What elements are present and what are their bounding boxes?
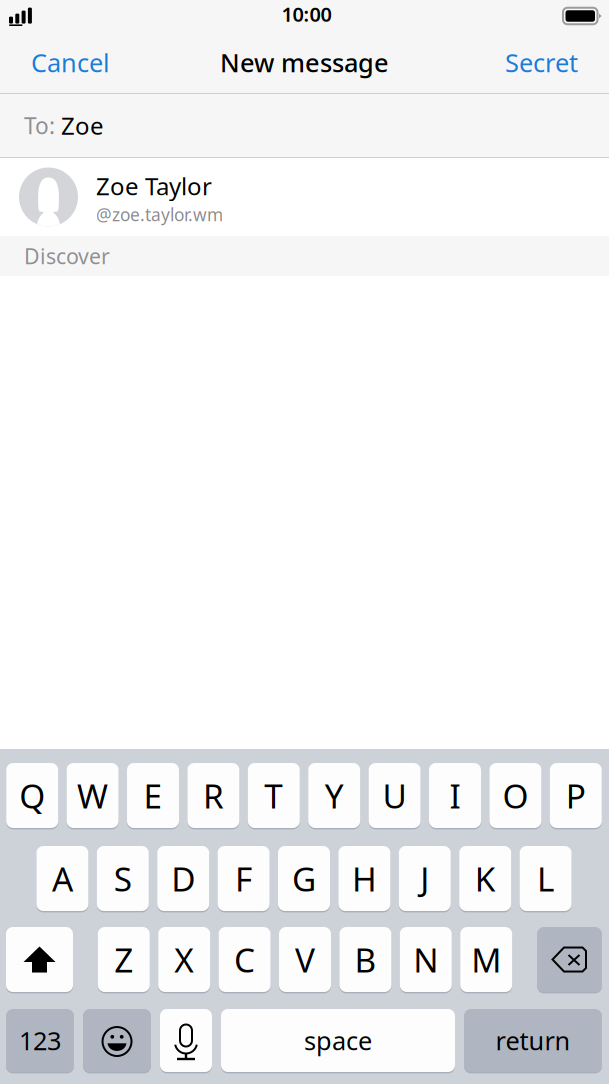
staticText: X: [174, 937, 194, 982]
staticText: return: [495, 1024, 570, 1057]
staticText: B: [354, 937, 376, 982]
button[interactable]: space: [221, 1008, 455, 1073]
button[interactable]: return: [464, 1008, 602, 1073]
staticText: Zoe Taylor: [96, 170, 212, 202]
staticText: V: [295, 937, 315, 982]
staticText: 10:00: [281, 1, 331, 27]
staticText: E: [143, 773, 162, 818]
staticText: Discover: [24, 242, 110, 270]
staticText: L: [537, 856, 554, 901]
staticText: Cancel: [31, 46, 110, 79]
staticText: @zoe.taylor.wm: [96, 203, 223, 226]
button[interactable]: F: [218, 845, 270, 912]
button[interactable]: C: [219, 926, 271, 993]
button[interactable]: Cancel: [15, 34, 126, 91]
button[interactable]: L: [520, 845, 572, 912]
staticText: Secret: [505, 46, 578, 79]
staticText: Y: [325, 773, 344, 818]
button[interactable]: K: [459, 845, 511, 912]
button[interactable]: B: [339, 926, 391, 993]
staticText: H: [352, 856, 377, 901]
button[interactable]: R: [187, 762, 239, 829]
staticText: O: [502, 773, 528, 818]
staticText: Q: [19, 773, 45, 818]
button[interactable]: M: [460, 926, 512, 993]
button[interactable]: Y: [308, 762, 360, 829]
button[interactable]: Z: [98, 926, 150, 993]
staticText: Zoe: [55, 110, 104, 141]
staticText: 123: [19, 1024, 61, 1057]
staticText: F: [235, 856, 252, 901]
button[interactable]: Dictate: [160, 1008, 212, 1073]
button[interactable]: A: [36, 845, 88, 912]
staticText: W: [77, 773, 108, 818]
staticText: C: [234, 937, 255, 982]
staticText: N: [413, 937, 438, 982]
button[interactable]: P: [550, 762, 602, 829]
staticText: I: [449, 773, 460, 818]
button[interactable]: Emoji: [83, 1008, 151, 1073]
button[interactable]: Secret: [489, 34, 594, 91]
staticText: To:: [24, 110, 55, 140]
button[interactable]: N: [400, 926, 452, 993]
staticText: T: [264, 773, 283, 818]
staticText: New message: [220, 46, 389, 79]
button[interactable]: I: [429, 762, 481, 829]
staticText: D: [171, 856, 195, 901]
staticText: P: [566, 773, 586, 818]
staticText: A: [52, 856, 73, 901]
staticText: S: [114, 856, 132, 901]
button[interactable]: D: [157, 845, 209, 912]
staticText: R: [203, 773, 224, 818]
button[interactable]: 123: [6, 1008, 74, 1073]
button[interactable]: X: [158, 926, 210, 993]
staticText: K: [475, 856, 496, 901]
button[interactable]: S: [97, 845, 149, 912]
button[interactable]: Q: [6, 762, 58, 829]
button[interactable]: Shift: [6, 926, 73, 993]
staticText: U: [383, 773, 407, 818]
staticText: J: [420, 856, 429, 901]
staticText: G: [292, 856, 316, 901]
button[interactable]: E: [127, 762, 179, 829]
button[interactable]: T: [248, 762, 300, 829]
button[interactable]: Zoe Taylor: [0, 158, 609, 236]
button[interactable]: V: [279, 926, 331, 993]
staticText: M: [471, 937, 501, 982]
button[interactable]: J: [399, 845, 451, 912]
button[interactable]: H: [338, 845, 390, 912]
button[interactable]: U: [369, 762, 421, 829]
staticText: Z: [114, 937, 133, 982]
button[interactable]: Delete: [537, 926, 602, 993]
button[interactable]: O: [489, 762, 541, 829]
staticText: space: [304, 1024, 372, 1057]
button[interactable]: W: [67, 762, 119, 829]
button[interactable]: G: [278, 845, 330, 912]
